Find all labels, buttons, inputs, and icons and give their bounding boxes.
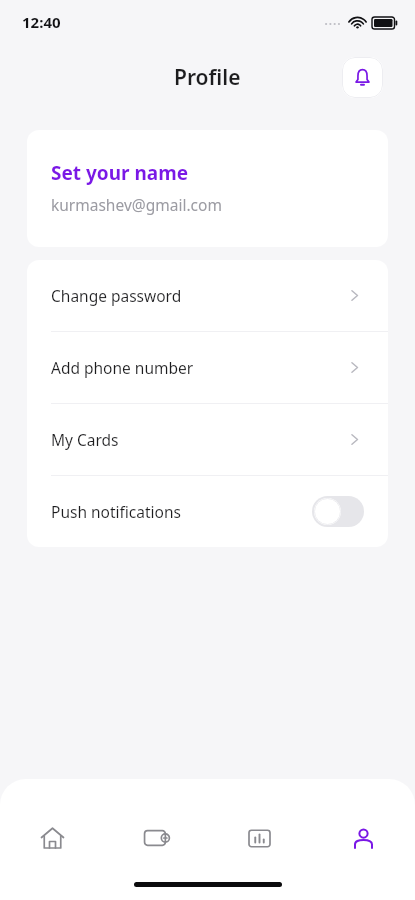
- button[interactable]: Statistics: [230, 809, 288, 867]
- staticText: Push notifications: [51, 501, 312, 522]
- button[interactable]: Set your name: [27, 130, 388, 247]
- button[interactable]: My Cards: [27, 404, 388, 475]
- button[interactable]: Add phone number: [27, 332, 388, 403]
- button[interactable]: Profile: [334, 809, 392, 867]
- staticText: My Cards: [51, 429, 347, 450]
- staticText: 12:40: [22, 12, 61, 32]
- button[interactable]: Change password: [27, 260, 388, 331]
- button[interactable]: Push notifications: [27, 476, 388, 547]
- button[interactable]: Wallet: [127, 809, 185, 867]
- button[interactable]: Notifications: [342, 57, 383, 98]
- staticText: Add phone number: [51, 357, 347, 378]
- staticText: Profile: [174, 63, 241, 92]
- staticText: Change password: [51, 285, 347, 306]
- button[interactable]: Home: [23, 809, 81, 867]
- staticText: Set your name: [51, 160, 189, 186]
- staticText: kurmashev@gmail.com: [51, 194, 222, 215]
